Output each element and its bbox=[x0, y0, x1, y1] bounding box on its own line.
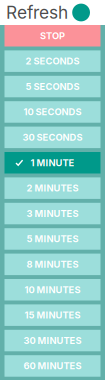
button[interactable]: 8 MINUTES bbox=[4, 254, 100, 275]
staticText: 15 MINUTES bbox=[24, 309, 80, 321]
staticText: STOP bbox=[40, 30, 65, 41]
staticText: 1 MINUTE bbox=[30, 157, 74, 168]
staticText: 10 SECONDS bbox=[23, 106, 81, 118]
staticText: 8 MINUTES bbox=[26, 259, 78, 270]
button[interactable]: 60 MINUTES bbox=[4, 355, 100, 377]
button[interactable]: Show list bbox=[72, 4, 90, 21]
staticText: 30 MINUTES bbox=[23, 335, 81, 346]
button[interactable]: 15 MINUTES bbox=[4, 304, 100, 326]
button[interactable]: 10 SECONDS bbox=[4, 101, 100, 123]
staticText: 5 SECONDS bbox=[25, 81, 79, 92]
button[interactable]: STOP bbox=[4, 25, 100, 46]
staticText: 2 SECONDS bbox=[25, 55, 79, 67]
button[interactable]: 1 MINUTE bbox=[4, 152, 100, 173]
button[interactable]: 30 SECONDS bbox=[4, 127, 100, 148]
button[interactable]: 2 SECONDS bbox=[4, 50, 100, 72]
button[interactable]: 3 MINUTES bbox=[4, 203, 100, 224]
button[interactable]: 5 MINUTES bbox=[4, 228, 100, 250]
button[interactable]: 2 MINUTES bbox=[4, 177, 100, 199]
button[interactable]: 30 MINUTES bbox=[4, 330, 100, 351]
button[interactable]: 10 MINUTES bbox=[4, 279, 100, 300]
staticText: 60 MINUTES bbox=[23, 360, 81, 372]
staticText: 30 SECONDS bbox=[22, 132, 82, 143]
staticText: 10 MINUTES bbox=[24, 284, 80, 295]
button[interactable]: 5 SECONDS bbox=[4, 76, 100, 97]
staticText: 3 MINUTES bbox=[26, 208, 78, 219]
staticText: Refresh bbox=[6, 2, 68, 23]
staticText: 5 MINUTES bbox=[26, 233, 78, 245]
staticText: 2 MINUTES bbox=[26, 182, 78, 194]
